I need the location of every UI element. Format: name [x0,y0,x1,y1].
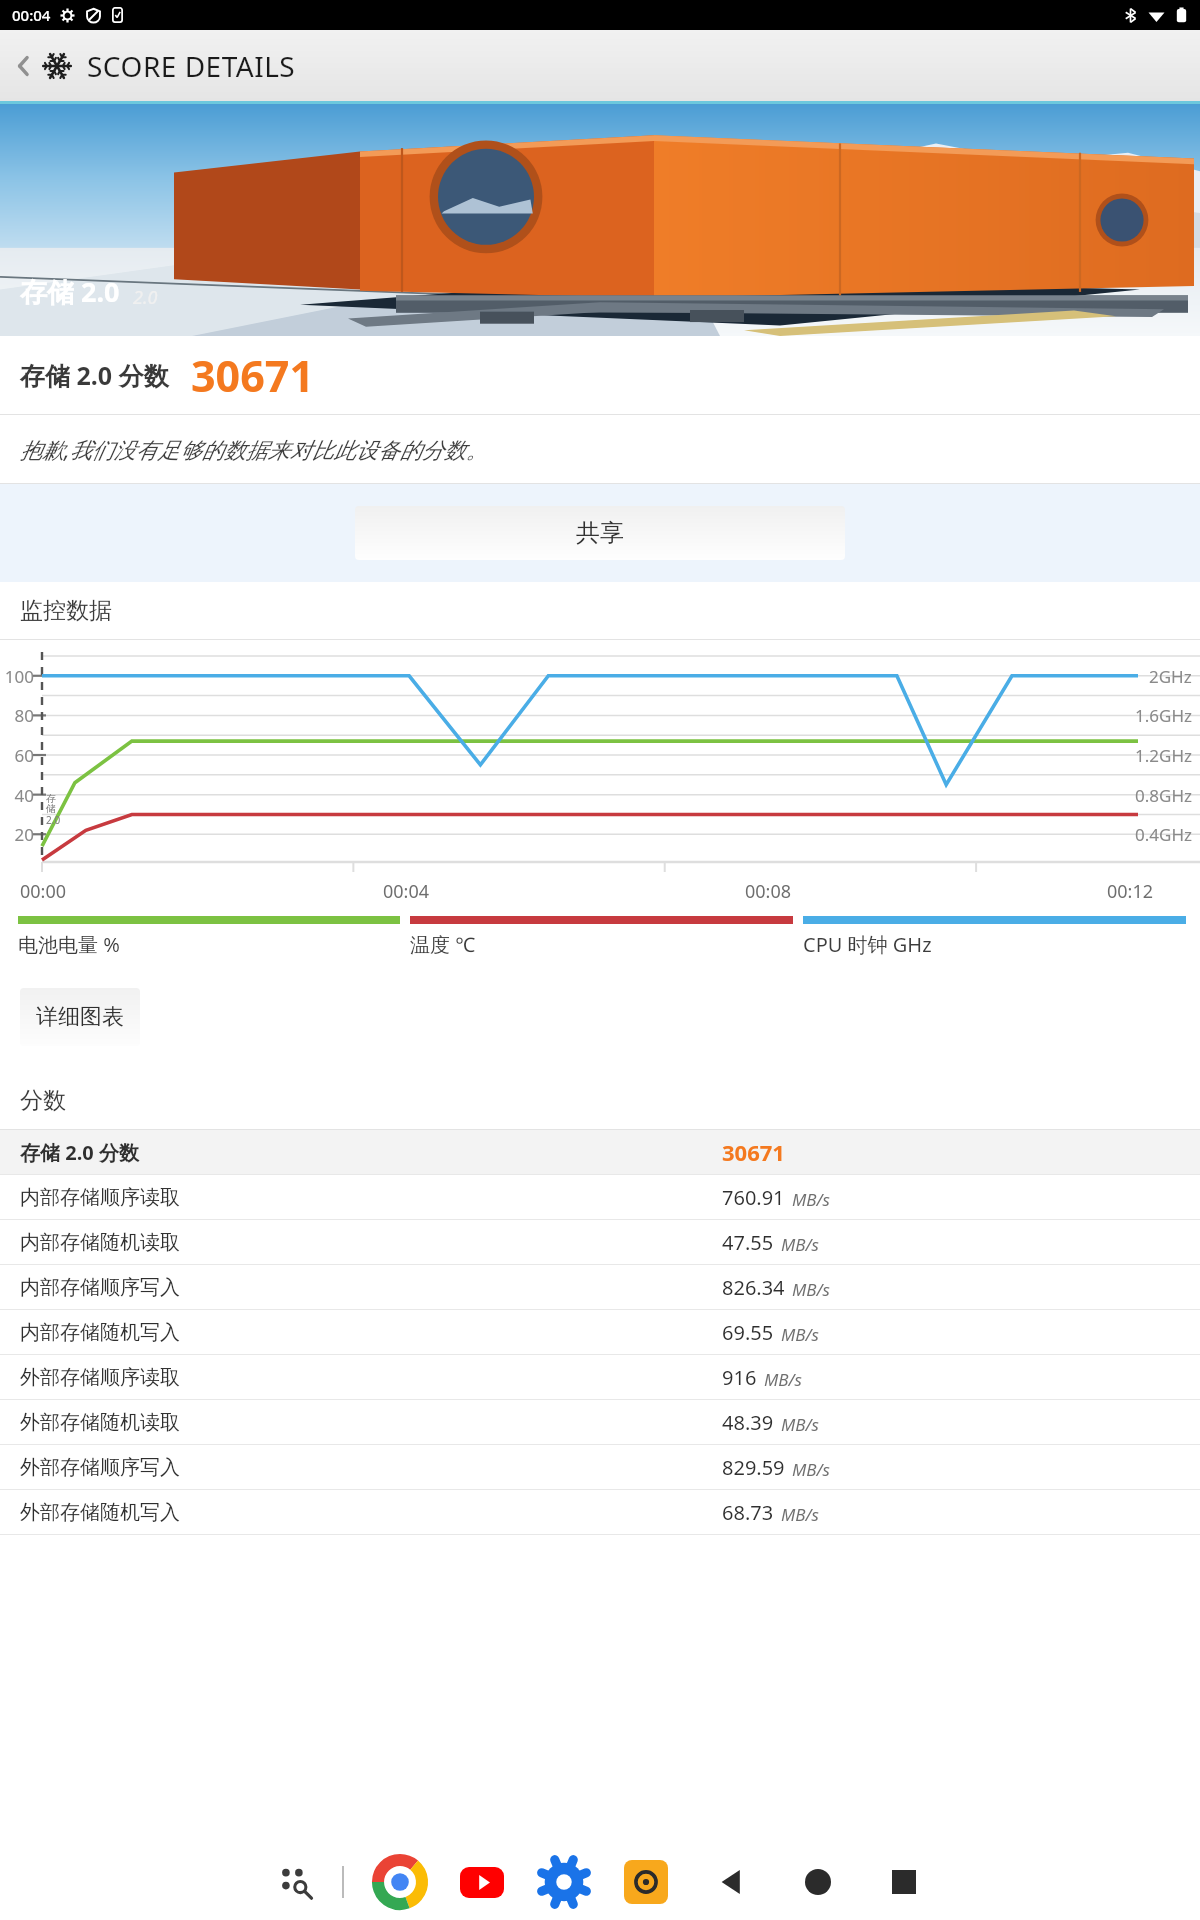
button[interactable]: Settings [534,1852,594,1912]
button[interactable]: 内部存储顺序写入 [0,1265,1200,1309]
staticText: 760.91 [722,1184,785,1211]
button[interactable]: Back [702,1852,762,1912]
staticText: 内部存储随机读取 [20,1230,180,1255]
staticText: 00:12 [1107,879,1154,904]
staticText: MB/s [781,1413,819,1436]
button[interactable]: 内部存储随机写入 [0,1310,1200,1354]
staticText: 存储 2.0 分数 [20,358,169,392]
button[interactable]: 外部存储顺序写入 [0,1445,1200,1489]
staticText: 外部存储随机读取 [20,1410,180,1435]
staticText: 共享 [576,518,624,548]
staticText: 80 [0,704,34,727]
staticText: 00:08 [745,879,792,904]
staticText: 外部存储顺序写入 [20,1455,180,1480]
staticText: MB/s [792,1458,830,1481]
button[interactable]: Recents [874,1852,934,1912]
button[interactable]: Back [6,48,42,84]
staticText: 详细图表 [36,1003,124,1031]
staticText: 826.34 [722,1274,785,1301]
staticText: MB/s [781,1233,819,1256]
staticText: 916 [722,1364,757,1391]
staticText: 0.4GHz [1135,823,1192,846]
staticText: CPU 时钟 GHz [803,931,1186,958]
staticText: MB/s [764,1368,802,1391]
staticText: 外部存储顺序读取 [20,1365,180,1390]
button[interactable]: 内部存储随机读取 [0,1220,1200,1264]
staticText: 0.8GHz [1135,784,1192,807]
staticText: 监控数据 [20,596,112,625]
staticText: 存储 2.0 [20,273,120,310]
staticText: 2GHz [1149,665,1192,688]
staticText: MB/s [792,1278,830,1301]
staticText: 2.0 [133,285,158,310]
button[interactable]: App search [266,1852,326,1912]
button[interactable]: 外部存储顺序读取 [0,1355,1200,1399]
button[interactable]: 外部存储随机读取 [0,1400,1200,1444]
button[interactable]: Chrome [370,1852,430,1912]
staticText: SCORE DETAILS [87,47,296,85]
staticText: 69.55 [722,1319,774,1346]
staticText: 47.55 [722,1229,774,1256]
staticText: MB/s [792,1188,830,1211]
staticText: 电池电量 % [18,931,400,958]
staticText: 68.73 [722,1499,774,1526]
staticText: MB/s [781,1323,819,1346]
staticText: MB/s [781,1503,819,1526]
button[interactable]: 内部存储顺序读取 [0,1175,1200,1219]
staticText: 分数 [20,1086,66,1115]
staticText: 1.6GHz [1135,704,1192,727]
staticText: 30671 [191,346,314,405]
staticText: 1.2GHz [1135,744,1192,767]
staticText: 外部存储随机写入 [20,1500,180,1525]
staticText: 60 [0,744,34,767]
staticText: 40 [0,784,34,807]
staticText: 00:04 [12,5,51,25]
staticText: 00:00 [20,879,67,904]
button[interactable]: 外部存储随机写入 [0,1490,1200,1534]
staticText: 内部存储顺序读取 [20,1185,180,1210]
button[interactable]: 详细图表 [20,988,140,1046]
staticText: 内部存储顺序写入 [20,1275,180,1300]
staticText: 温度 ℃ [410,931,793,958]
button[interactable]: 共享 [355,506,845,560]
staticText: 存 储 2.0 [46,792,61,827]
staticText: 内部存储随机写入 [20,1320,180,1345]
staticText: 存储 2.0 分数 [20,1139,139,1166]
staticText: 00:04 [383,879,430,904]
staticText: 48.39 [722,1409,774,1436]
button[interactable]: 存储 2.0 分数 [0,1130,1200,1174]
staticText: 20 [0,823,34,846]
button[interactable]: YouTube [452,1852,512,1912]
staticText: 829.59 [722,1454,785,1481]
staticText: 30671 [722,1137,785,1167]
button[interactable]: Benchmark app [616,1852,676,1912]
staticText: 抱歉,我们没有足够的数据来对比此设备的分数。 [20,434,488,464]
staticText: 100 [0,665,34,688]
button[interactable]: Home [788,1852,848,1912]
